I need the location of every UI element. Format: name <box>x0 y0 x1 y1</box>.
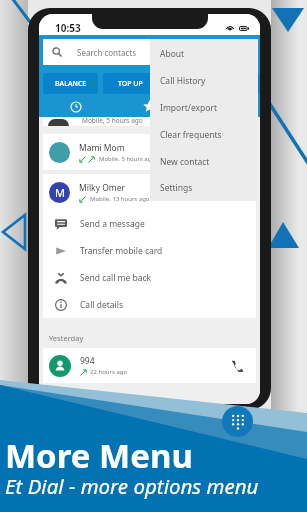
staticText: Mobile, 5 hours ago <box>99 155 156 163</box>
button[interactable]: About <box>150 40 258 67</box>
staticText: 22 hours ago <box>90 368 128 376</box>
staticText: Mobile, 13 hours ago <box>90 195 150 203</box>
staticText: New contact <box>160 156 210 168</box>
staticText: TOP UP <box>118 79 143 89</box>
button[interactable]: BALANCE <box>43 73 98 94</box>
button[interactable]: Send a message <box>43 210 256 237</box>
staticText: Transfer mobile card <box>80 245 163 257</box>
button[interactable]: Clear frequents <box>150 121 258 148</box>
button[interactable]: Send call me back <box>43 264 256 291</box>
staticText: Search contacts <box>77 47 136 58</box>
button[interactable]: Call <box>225 354 249 378</box>
button[interactable]: Recents <box>39 96 112 117</box>
staticText: Clear frequents <box>160 129 222 141</box>
staticText: Yesterday <box>49 333 84 343</box>
button[interactable]: Settings <box>150 175 258 201</box>
staticText: Call History <box>160 75 206 87</box>
staticText: Send a message <box>80 218 145 230</box>
staticText: More Menu <box>5 433 193 478</box>
button[interactable]: Call details <box>43 291 256 318</box>
staticText: Mami Mom <box>79 142 125 154</box>
button[interactable]: MORE <box>223 73 260 94</box>
staticText: HISTORY <box>176 79 206 89</box>
staticText: Mobile, 5 hours ago <box>82 116 143 125</box>
staticText: 10:53 <box>55 21 81 35</box>
button[interactable]: M <box>43 174 256 210</box>
button[interactable]: 994 <box>43 348 256 383</box>
button[interactable]: Dialpad <box>222 406 253 437</box>
staticText: 994 <box>80 355 95 367</box>
staticText: Call details <box>80 299 124 311</box>
button[interactable]: Call History <box>150 67 258 94</box>
button[interactable]: Favorites <box>112 96 186 117</box>
button[interactable]: Transfer mobile card <box>43 237 256 264</box>
staticText: Settings <box>160 182 193 194</box>
button[interactable]: Import/export <box>150 94 258 121</box>
button[interactable]: TOP UP <box>103 73 158 94</box>
button[interactable]: New contact <box>150 148 258 175</box>
button[interactable]: Contacts <box>186 96 260 117</box>
staticText: About <box>160 48 185 60</box>
button[interactable]: Mami Mom <box>43 134 256 170</box>
staticText: Et Dial - more options menu <box>5 472 259 500</box>
staticText: Send call me back <box>80 272 152 284</box>
staticText: Import/export <box>160 102 218 114</box>
staticText: Milky Omer <box>79 182 126 194</box>
staticText: M <box>55 185 65 200</box>
button[interactable]: Search contacts <box>43 39 256 65</box>
button[interactable]: HISTORY <box>163 73 218 94</box>
staticText: BALANCE <box>55 79 87 89</box>
